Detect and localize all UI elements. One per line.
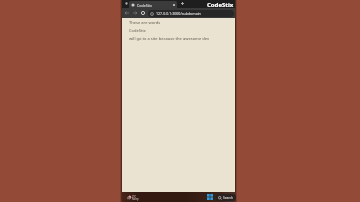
button[interactable]: Search bbox=[216, 194, 236, 201]
button[interactable]: Weather bbox=[125, 194, 132, 201]
button[interactable]: Start bbox=[206, 193, 214, 201]
button[interactable]: Forward bbox=[131, 9, 139, 17]
button[interactable]: New tab bbox=[179, 0, 186, 7]
button[interactable]: 127.0.0.1:3000/subdomain bbox=[148, 10, 234, 17]
staticText: These are words bbox=[129, 20, 161, 25]
staticText: 7°C Rainy bbox=[132, 195, 139, 201]
button[interactable]: Close tab bbox=[172, 3, 176, 7]
button[interactable]: Search tabs bbox=[123, 0, 130, 7]
staticText: will go to a site because the awesome de… bbox=[129, 36, 210, 41]
staticText: Search bbox=[223, 196, 234, 200]
staticText: CodeStix bbox=[129, 28, 146, 33]
button[interactable]: Back bbox=[123, 9, 131, 17]
staticText: CodeStix bbox=[207, 1, 234, 9]
button[interactable]: CodeStix bbox=[129, 1, 177, 9]
button[interactable]: Reload bbox=[139, 9, 147, 17]
staticText: 127.0.0.1:3000/subdomain bbox=[156, 11, 201, 16]
staticText: CodeStix bbox=[137, 3, 152, 8]
